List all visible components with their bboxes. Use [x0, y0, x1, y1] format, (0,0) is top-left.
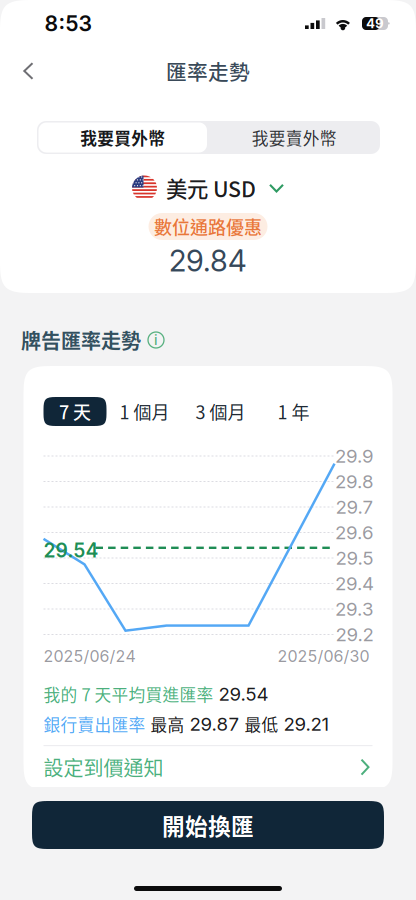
button[interactable]: 開始換匯 [0, 787, 416, 849]
staticText: 7 天 [59, 398, 91, 425]
staticText: 2025/06/30 [277, 646, 369, 666]
staticText: 29.54 [43, 539, 98, 562]
staticText: 我要買外幣 [80, 125, 165, 149]
staticText: 2025/06/24 [43, 646, 135, 666]
button[interactable]: 設定到價通知 [23, 746, 392, 788]
button[interactable]: 我要買外幣 [37, 121, 208, 154]
staticText: 設定到價通知 [43, 753, 163, 782]
staticText: 我要賣外幣 [252, 125, 337, 149]
button[interactable]: 7 天 [43, 397, 106, 426]
staticText: 29.21 [283, 713, 329, 735]
button[interactable]: Information [148, 332, 164, 348]
staticText: 美元 USD [166, 173, 256, 203]
button[interactable]: 3 個月 [182, 397, 258, 426]
staticText: 匯率走勢 [166, 56, 250, 86]
staticText: 29.6 [335, 521, 374, 544]
button[interactable]: 我要賣外幣 [208, 121, 380, 154]
staticText: 29.7 [335, 496, 373, 518]
staticText: 數位通路優惠 [154, 213, 262, 240]
staticText: 牌告匯率走勢 [21, 325, 141, 354]
button[interactable]: Back [12, 51, 45, 91]
staticText: 1 年 [277, 398, 309, 425]
staticText: 8:53 [44, 11, 92, 36]
staticText: 最高 [150, 712, 184, 736]
staticText: 29.3 [335, 598, 374, 620]
button[interactable]: 1 個月 [106, 397, 182, 426]
staticText: 29.2 [335, 623, 373, 646]
staticText: 29.9 [335, 445, 374, 467]
staticText: 銀行賣出匯率 [43, 712, 145, 736]
staticText: 29.5 [335, 547, 373, 569]
staticText: 49 [366, 15, 384, 31]
button[interactable]: 1 年 [258, 397, 328, 426]
staticText: 29.4 [335, 572, 374, 595]
staticText: 1 個月 [119, 398, 169, 425]
staticText: 29.87 [189, 713, 239, 735]
staticText: 開始換匯 [162, 809, 254, 841]
staticText: i [154, 331, 158, 348]
staticText: 29.84 [169, 243, 247, 278]
staticText: 最低 [244, 712, 278, 736]
button[interactable]: 美元 USD [132, 174, 284, 202]
staticText: 29.8 [335, 470, 374, 493]
staticText: 29.54 [218, 683, 268, 705]
staticText: 3 個月 [195, 398, 245, 425]
staticText: 我的 7 天平均買進匯率 [43, 682, 213, 706]
